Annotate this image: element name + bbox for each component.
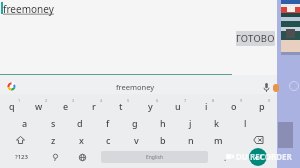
staticText: p bbox=[259, 100, 265, 112]
button[interactable]: z bbox=[40, 132, 66, 148]
staticText: f bbox=[106, 117, 110, 129]
staticText: y bbox=[148, 100, 153, 112]
staticText: DU RECORDER bbox=[236, 151, 292, 162]
staticText: 7 bbox=[184, 98, 187, 103]
staticText: v bbox=[134, 134, 139, 146]
button[interactable]: freemoney bbox=[116, 82, 155, 92]
staticText: d bbox=[77, 117, 83, 129]
button[interactable]: d bbox=[67, 115, 93, 131]
button[interactable]: k bbox=[204, 115, 230, 131]
button[interactable]: Backspace bbox=[246, 132, 270, 148]
staticText: t bbox=[119, 100, 123, 112]
staticText: a bbox=[22, 117, 28, 129]
button[interactable]: v bbox=[123, 132, 149, 148]
button[interactable]: Google bbox=[7, 82, 16, 91]
button[interactable]: l bbox=[232, 115, 258, 131]
staticText: 2 bbox=[45, 98, 48, 103]
staticText: w bbox=[35, 100, 43, 112]
button[interactable]: o bbox=[221, 98, 247, 114]
staticText: r bbox=[92, 100, 96, 112]
button[interactable]: s bbox=[40, 115, 66, 131]
staticText: g bbox=[132, 117, 138, 129]
staticText: h bbox=[160, 117, 166, 129]
staticText: j bbox=[189, 117, 192, 129]
staticText: l bbox=[244, 117, 247, 129]
staticText: n bbox=[188, 134, 194, 146]
staticText: u bbox=[175, 100, 181, 112]
button[interactable]: p bbox=[249, 98, 275, 114]
button[interactable]: Voice input bbox=[260, 81, 272, 93]
staticText: freemoney bbox=[116, 82, 155, 92]
button[interactable]: n bbox=[178, 132, 204, 148]
button[interactable]: Period bbox=[217, 149, 233, 165]
staticText: s bbox=[51, 117, 56, 129]
button[interactable]: g bbox=[122, 115, 148, 131]
button[interactable]: u bbox=[165, 98, 191, 114]
staticText: 9 bbox=[240, 98, 243, 103]
staticText: 0 bbox=[268, 98, 271, 103]
staticText: English bbox=[146, 154, 164, 161]
button[interactable]: a bbox=[12, 115, 38, 131]
staticText: 3 bbox=[72, 98, 75, 103]
button[interactable]: h bbox=[150, 115, 176, 131]
button[interactable]: ГОТОВО bbox=[236, 31, 275, 46]
staticText: m bbox=[214, 134, 223, 146]
button[interactable]: q bbox=[0, 98, 25, 114]
button[interactable]: t bbox=[108, 98, 134, 114]
button[interactable]: English bbox=[101, 151, 208, 163]
staticText: 6 bbox=[156, 98, 159, 103]
button[interactable]: j bbox=[177, 115, 203, 131]
button[interactable]: c bbox=[95, 132, 121, 148]
button[interactable]: f bbox=[95, 115, 121, 131]
staticText: k bbox=[214, 117, 220, 129]
button[interactable]: b bbox=[150, 132, 176, 148]
button[interactable]: r bbox=[81, 98, 107, 114]
staticText: e bbox=[63, 100, 69, 112]
button[interactable]: Emoji bbox=[47, 149, 63, 165]
button[interactable]: Enter bbox=[249, 148, 267, 166]
button[interactable]: Shift bbox=[8, 132, 32, 148]
button[interactable]: Switch language bbox=[74, 149, 90, 165]
staticText: q bbox=[9, 100, 15, 112]
staticText: 5 bbox=[127, 98, 130, 103]
button[interactable]: m bbox=[205, 132, 231, 148]
button[interactable]: i bbox=[193, 98, 219, 114]
staticText: i bbox=[205, 100, 208, 112]
staticText: ГОТОВО bbox=[236, 32, 275, 45]
staticText: x bbox=[79, 134, 84, 146]
staticText: z bbox=[51, 134, 56, 146]
button[interactable]: e bbox=[53, 98, 79, 114]
staticText: ?123 bbox=[15, 153, 28, 161]
button[interactable]: freemoney bbox=[3, 2, 54, 16]
button[interactable]: x bbox=[68, 132, 94, 148]
staticText: . bbox=[224, 152, 227, 163]
staticText: 1 bbox=[18, 98, 21, 103]
staticText: 8 bbox=[212, 98, 215, 103]
staticText: 4 bbox=[100, 98, 103, 103]
staticText: b bbox=[160, 134, 166, 146]
button[interactable]: ?123 bbox=[8, 149, 34, 165]
button[interactable]: y bbox=[137, 98, 163, 114]
staticText: c bbox=[106, 134, 111, 146]
staticText: freemoney bbox=[3, 2, 54, 16]
button[interactable]: w bbox=[26, 98, 52, 114]
staticText: o bbox=[231, 100, 237, 112]
